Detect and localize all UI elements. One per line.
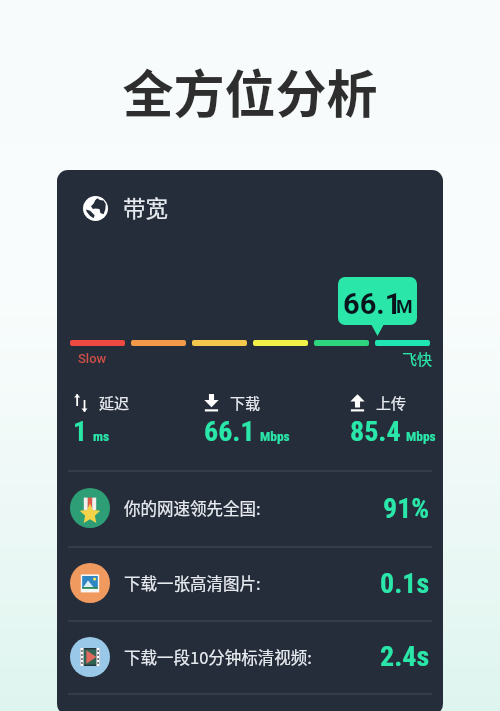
staticText: M — [396, 295, 413, 317]
staticText: 下载一段10分钟标清视频: — [124, 645, 312, 669]
other: Download picture — [70, 563, 110, 603]
button[interactable]: Upload — [350, 388, 436, 421]
staticText: 下载一张高清图片: — [124, 571, 261, 595]
staticText: 带宽 — [123, 191, 169, 224]
staticText: 你的网速领先全国: — [124, 496, 261, 520]
other: Ranking medal — [70, 488, 110, 528]
button[interactable]: Download picture — [57, 546, 443, 620]
staticText: 上传 — [376, 392, 407, 414]
button[interactable]: Ranking medal — [57, 470, 443, 546]
staticText: 全方位分析 — [0, 54, 500, 128]
other: Latency — [73, 394, 89, 412]
other: Download video — [70, 637, 110, 677]
staticText: 延迟 — [99, 392, 130, 414]
staticText: Slow — [78, 351, 107, 366]
staticText: ms — [93, 428, 110, 444]
staticText: Mbps — [260, 428, 290, 444]
staticText: 91% — [383, 492, 430, 525]
button[interactable]: Download — [204, 388, 290, 421]
staticText: 2.4s — [380, 640, 430, 673]
staticText: 0.1s — [380, 567, 430, 600]
staticText: 66.1 — [343, 287, 402, 321]
other: Bandwidth — [83, 196, 108, 221]
staticText: 85.4 — [350, 415, 401, 448]
staticText: 1 — [73, 415, 88, 448]
staticText: 下载 — [230, 392, 261, 414]
button[interactable]: Download video — [57, 620, 443, 693]
other: Upload — [350, 394, 365, 412]
button[interactable]: Latency — [73, 388, 110, 421]
staticText: 66.1 — [204, 415, 255, 448]
staticText: Mbps — [406, 428, 436, 444]
staticText: 飞快 — [402, 348, 433, 370]
other: Download — [204, 394, 219, 412]
